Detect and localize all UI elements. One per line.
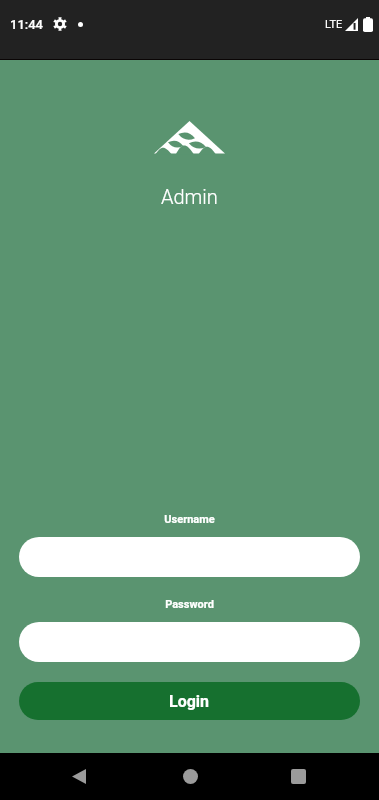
staticText: Admin — [161, 185, 218, 208]
button[interactable]: Text field — [19, 537, 360, 577]
staticText: Login — [169, 692, 210, 711]
staticText: LTE — [325, 18, 343, 31]
button[interactable]: Recent apps — [270, 753, 326, 800]
button[interactable]: Login — [19, 682, 360, 720]
button[interactable]: Text field — [19, 622, 360, 662]
button[interactable]: Home — [162, 753, 218, 800]
staticText: 11:44 — [10, 17, 44, 32]
staticText: Username — [19, 513, 360, 526]
button[interactable]: Back — [51, 753, 107, 800]
staticText: Password — [19, 598, 360, 611]
